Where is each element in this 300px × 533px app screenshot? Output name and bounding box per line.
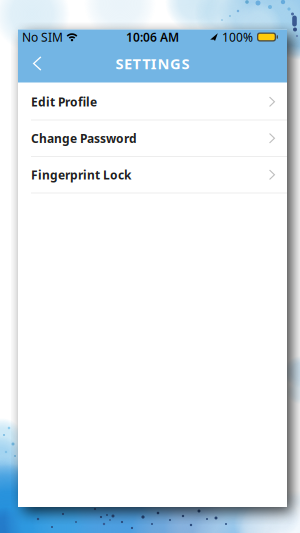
- button[interactable]: Edit Profile: [18, 84, 287, 120]
- staticText: SETTINGS: [115, 54, 190, 73]
- staticText: 100%: [222, 29, 253, 45]
- button[interactable]: Fingerprint Lock: [18, 157, 287, 193]
- staticText: 10:06 AM: [126, 29, 179, 45]
- staticText: No SIM: [22, 29, 63, 45]
- staticText: Change Password: [31, 130, 137, 146]
- staticText: Edit Profile: [31, 94, 97, 110]
- button[interactable]: Back: [18, 44, 53, 82]
- staticText: Fingerprint Lock: [31, 167, 131, 183]
- button[interactable]: Change Password: [18, 120, 287, 157]
